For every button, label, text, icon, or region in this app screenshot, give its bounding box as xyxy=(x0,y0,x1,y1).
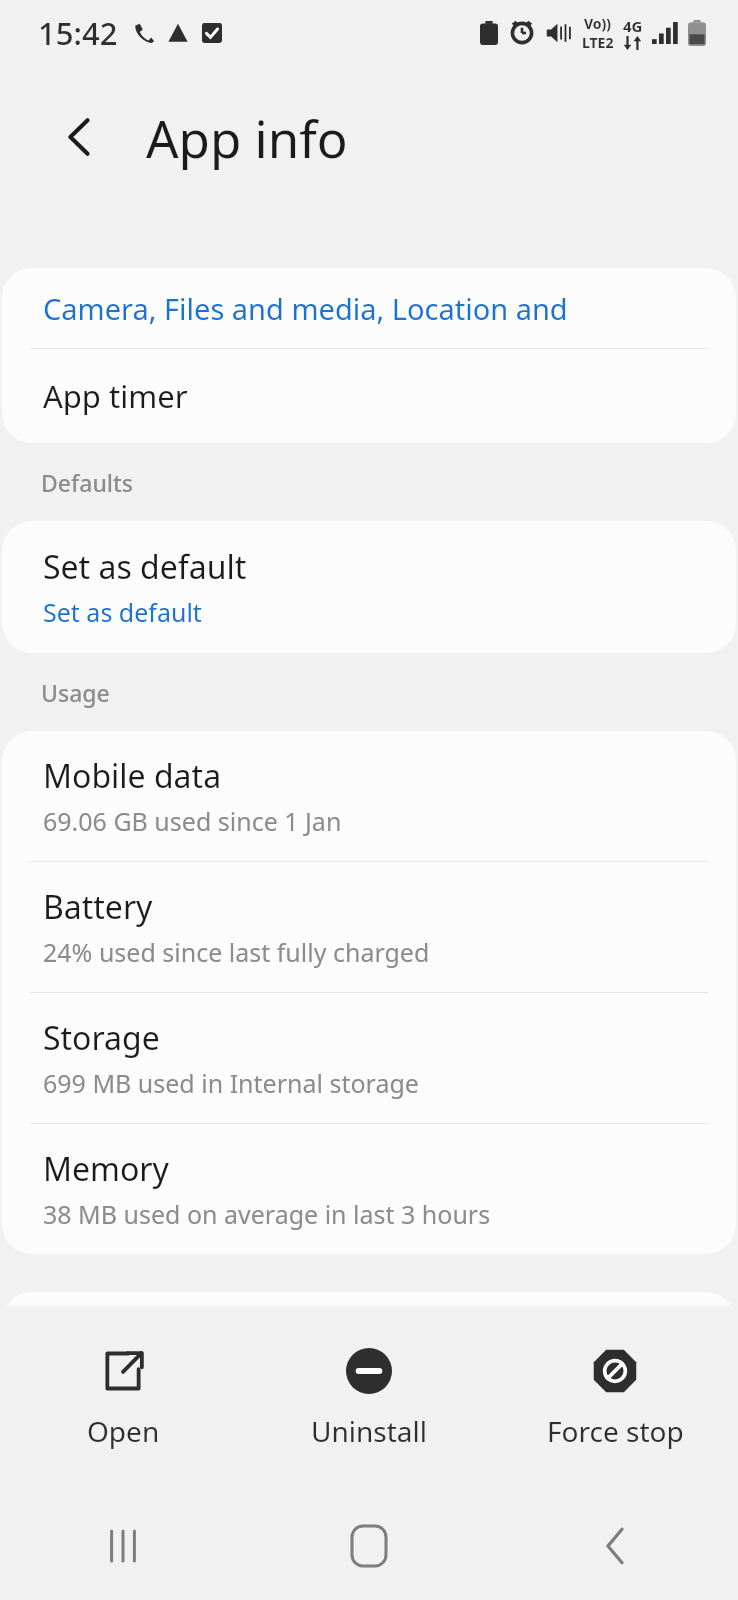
button[interactable]: Uninstall xyxy=(246,1306,492,1492)
button[interactable]: Back xyxy=(492,1492,738,1600)
button[interactable]: Recents xyxy=(0,1492,246,1600)
button[interactable]: Storage xyxy=(2,993,736,1123)
staticText: Storage xyxy=(43,1016,160,1060)
staticText: 15:42 xyxy=(38,12,118,54)
staticText: 69.06 GB used since 1 Jan xyxy=(43,804,342,838)
staticText: Memory xyxy=(43,1147,169,1191)
button[interactable]: Picture-in-picture xyxy=(2,1292,736,1424)
staticText: 4G xyxy=(623,16,643,36)
staticText: Set as default xyxy=(43,595,202,629)
button[interactable]: Home xyxy=(246,1492,492,1600)
button[interactable]: Memory xyxy=(2,1124,736,1254)
staticText: Usage xyxy=(41,677,110,708)
button[interactable]: Back xyxy=(34,91,126,183)
staticText: Battery xyxy=(43,885,153,929)
staticText: Vo)) xyxy=(584,14,612,33)
button[interactable]: Camera, Files and media, Location and Mi… xyxy=(2,268,736,348)
staticText: App info xyxy=(146,103,348,172)
button[interactable]: Battery xyxy=(2,862,736,992)
staticText: Picture-in-picture xyxy=(43,1316,302,1360)
staticText: Open xyxy=(87,1412,160,1450)
staticText: 24% used since last fully charged xyxy=(43,935,430,969)
staticText: Camera, Files and media, Location and Mi… xyxy=(43,289,736,328)
staticText: Uninstall xyxy=(311,1412,427,1450)
staticText: App details in store xyxy=(43,1506,332,1550)
staticText: LTE2 xyxy=(582,33,614,52)
button[interactable]: Force stop xyxy=(492,1306,738,1492)
button[interactable]: App timer xyxy=(2,349,736,443)
button[interactable]: App details in store xyxy=(2,1462,736,1594)
staticText: Allowed xyxy=(43,1366,136,1400)
staticText: Set as default xyxy=(43,545,247,589)
staticText: Mobile data xyxy=(43,754,222,798)
staticText: 699 MB used in Internal storage xyxy=(43,1066,419,1100)
button[interactable]: Set as default xyxy=(2,521,736,653)
staticText: Defaults xyxy=(41,467,134,498)
button[interactable]: Open xyxy=(0,1306,246,1492)
staticText: 38 MB used on average in last 3 hours xyxy=(43,1197,491,1231)
staticText: App timer xyxy=(43,375,188,417)
staticText: Force stop xyxy=(547,1412,684,1450)
button[interactable]: Mobile data xyxy=(2,731,736,861)
